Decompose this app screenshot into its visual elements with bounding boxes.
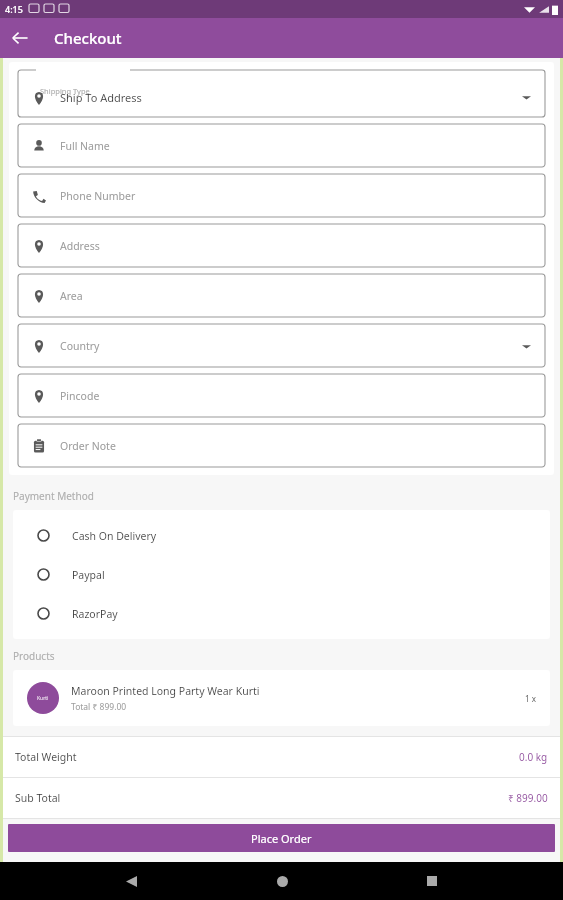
button[interactable]: Recents	[413, 862, 451, 900]
staticText: Paypal	[72, 568, 105, 582]
button[interactable]: Full Name	[18, 124, 545, 167]
button[interactable]: Phone Number	[18, 174, 545, 217]
button[interactable]: Address	[18, 224, 545, 267]
staticText: Phone Number	[60, 189, 136, 203]
staticText: 1 x	[525, 693, 536, 704]
button[interactable]: RazorPay	[13, 594, 550, 633]
button[interactable]: Shipping Type	[18, 70, 545, 117]
staticText: Total Weight	[15, 750, 77, 764]
staticText: Maroon Printed Long Party Wear Kurti	[71, 684, 260, 698]
staticText: Sub Total	[15, 791, 61, 805]
staticText: Order Note	[60, 439, 116, 453]
staticText: Full Name	[60, 139, 110, 153]
staticText: Payment Method	[13, 489, 94, 503]
button[interactable]: Place Order	[8, 824, 555, 852]
button[interactable]: Country	[18, 324, 545, 367]
staticText: Kurti	[37, 695, 49, 702]
staticText: Total ₹ 899.00	[71, 701, 127, 713]
button[interactable]: Kurti	[13, 670, 550, 726]
staticText: Shipping Type	[40, 86, 90, 96]
staticText: 0.0 kg	[519, 750, 548, 764]
staticText: Pincode	[60, 389, 100, 403]
button[interactable]: Area	[18, 274, 545, 317]
staticText: ₹ 899.00	[508, 791, 548, 805]
button[interactable]: Order Note	[18, 424, 545, 467]
staticText: Address	[60, 239, 100, 253]
staticText: Products	[13, 649, 55, 663]
button[interactable]: Cash On Delivery	[13, 516, 550, 555]
staticText: Country	[60, 339, 100, 353]
staticText: Cash On Delivery	[72, 529, 157, 543]
staticText: RazorPay	[72, 607, 118, 621]
staticText: 4:15	[5, 3, 23, 15]
staticText: Area	[60, 289, 83, 303]
staticText: Ship To Address	[60, 90, 142, 105]
staticText: Checkout	[54, 28, 122, 48]
button[interactable]: Paypal	[13, 555, 550, 594]
staticText: Place Order	[251, 831, 312, 846]
button[interactable]: Back	[0, 18, 40, 58]
button[interactable]: Pincode	[18, 374, 545, 417]
button[interactable]: Back	[112, 862, 150, 900]
button[interactable]: Home	[263, 862, 301, 900]
